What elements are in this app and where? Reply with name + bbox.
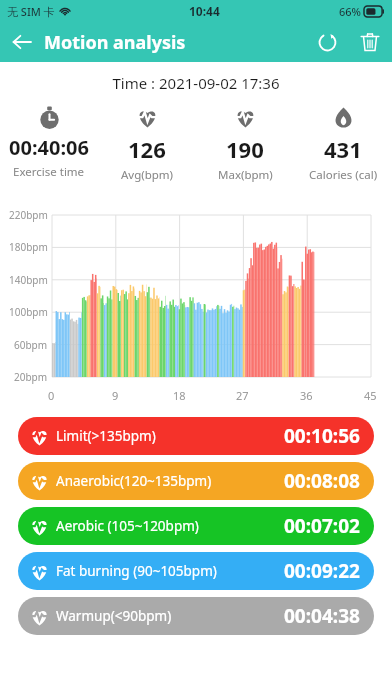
staticText: Exercise time [13,164,85,180]
staticText: 00:07:02 [284,513,360,539]
button[interactable]: 126 [98,106,196,183]
button[interactable]: Delete [348,22,392,62]
button[interactable]: Warmup(<90bpm) [18,597,374,635]
staticText: 431 [324,134,362,164]
staticText: 140bpm [9,273,48,287]
staticText: 无 SIM 卡 [7,4,55,19]
staticText: 100bpm [9,305,48,319]
button[interactable]: Limit(>135bpm) [18,417,374,455]
staticText: 00:40:06 [9,134,89,161]
staticText: Max(bpm) [218,167,273,183]
staticText: 10:44 [189,3,220,19]
staticText: 00:08:08 [284,468,360,494]
staticText: 20bpm [14,370,48,384]
staticText: 0 [48,388,55,403]
staticText: 66% [339,4,361,19]
staticText: Aerobic (105~120bpm) [56,517,199,535]
staticText: 190 [226,134,264,164]
button[interactable]: 00:40:06 [0,106,98,180]
staticText: Time : 2021-09-02 17:36 [0,73,392,93]
staticText: 220bpm [9,208,48,222]
button[interactable]: Refresh [306,22,348,62]
staticText: Motion analysis [44,30,186,55]
button[interactable]: Fat burning (90~105bpm) [18,552,374,590]
staticText: 60bpm [14,338,48,352]
staticText: 00:09:22 [284,558,360,584]
staticText: Warmup(<90bpm) [56,607,172,625]
staticText: 18 [173,388,186,403]
staticText: 00:10:56 [284,423,360,449]
staticText: Limit(>135bpm) [56,427,156,445]
button[interactable]: 431 [294,106,392,183]
staticText: 9 [112,388,119,403]
button[interactable]: Aerobic (105~120bpm) [18,507,374,545]
staticText: Anaerobic(120~135bpm) [56,472,212,490]
staticText: 27 [236,388,249,403]
staticText: 00:04:38 [284,603,360,629]
button[interactable]: 190 [196,106,294,183]
staticText: 45 [364,388,377,403]
staticText: Avg(bpm) [121,167,174,183]
staticText: 36 [300,388,313,403]
staticText: Calories (cal) [309,167,378,183]
button[interactable]: Anaerobic(120~135bpm) [18,462,374,500]
button[interactable]: Back [0,22,44,62]
staticText: 180bpm [9,240,48,254]
staticText: 126 [128,134,166,164]
staticText: Fat burning (90~105bpm) [56,562,217,580]
